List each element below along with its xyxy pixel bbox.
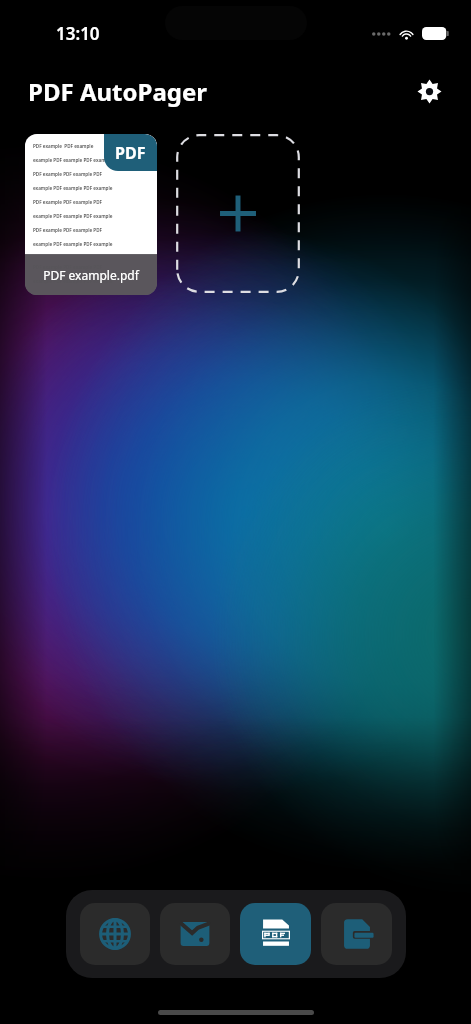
button[interactable]: Files [321, 903, 392, 965]
button[interactable]: Add PDF [176, 134, 300, 293]
button[interactable]: Mail [160, 903, 230, 965]
staticText: example PDF example PDF example [33, 278, 113, 284]
staticText: PDF example.pdf [43, 267, 139, 283]
button[interactable]: Settings [409, 71, 449, 111]
staticText: example PDF example PDF example [33, 185, 113, 191]
staticText: example PDF example PDF example [33, 157, 113, 163]
button[interactable]: Safari [80, 903, 150, 965]
staticText: example PDF example PDF example [33, 213, 113, 219]
button[interactable]: PDF AutoPager [240, 903, 311, 965]
button[interactable]: PDF example PDF example [25, 134, 157, 295]
staticText: PDF example PDF example [33, 143, 94, 149]
staticText: PDF AutoPager [28, 75, 208, 108]
staticText: PDF example PDF example PDF [33, 227, 103, 233]
staticText: example PDF example PDF example [33, 241, 113, 247]
staticText: PDF example PDF example PDF [33, 199, 103, 205]
staticText: PDF example PDF example PDF [33, 171, 103, 177]
staticText: 13:10 [56, 22, 100, 45]
staticText: PDF [115, 142, 146, 164]
